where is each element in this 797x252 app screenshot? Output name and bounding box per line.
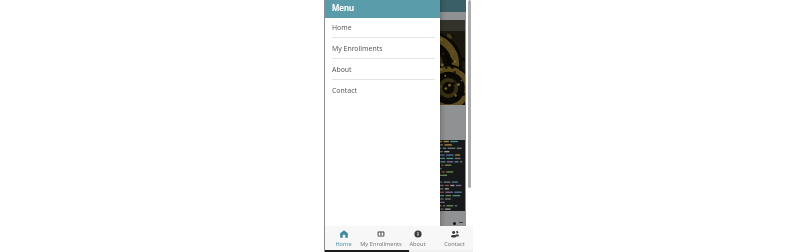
staticText: My Enrollments (332, 44, 383, 53)
staticText: Menu (332, 2, 354, 13)
button[interactable]: My Enrollments (362, 226, 399, 252)
button[interactable]: About (325, 59, 440, 80)
button[interactable]: My Enrollments (325, 38, 440, 59)
button[interactable]: Home (325, 226, 362, 252)
staticText: Contact (444, 240, 465, 248)
button[interactable]: Contact (436, 226, 473, 252)
staticText: About (409, 240, 426, 248)
staticText: Home (332, 23, 352, 32)
staticText: My Enrollments (360, 240, 402, 248)
button[interactable]: About (399, 226, 436, 252)
button[interactable]: Home (325, 18, 440, 38)
button[interactable]: Contact (325, 80, 440, 100)
staticText: Home (335, 240, 352, 248)
button[interactable]: Menu (325, 0, 440, 18)
staticText: Contact (332, 86, 357, 95)
staticText: About (332, 65, 352, 74)
